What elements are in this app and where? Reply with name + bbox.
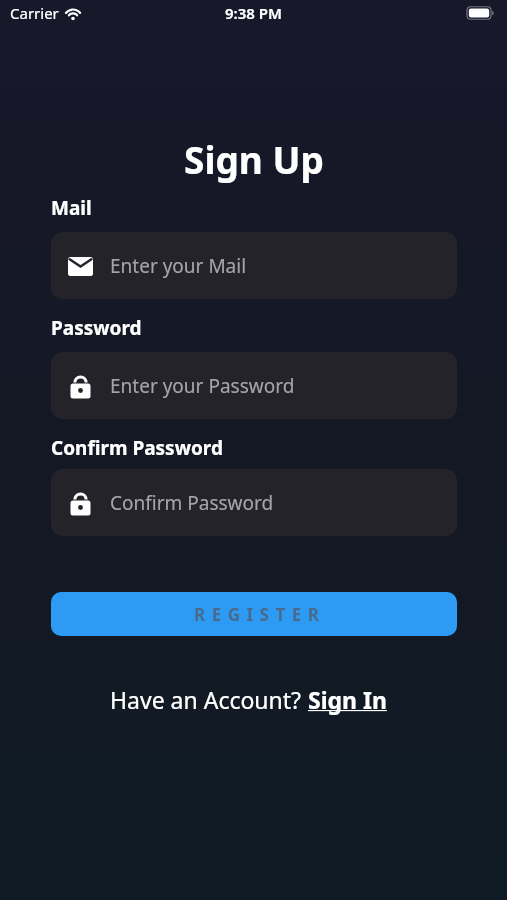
- button[interactable]: Enter your Password: [51, 352, 457, 419]
- staticText: REGISTER: [194, 603, 326, 626]
- button[interactable]: REGISTER: [51, 592, 457, 636]
- button[interactable]: Enter your Mail: [51, 232, 457, 299]
- staticText: Mail: [51, 195, 92, 221]
- button[interactable]: Confirm Password: [51, 469, 457, 536]
- button[interactable]: Sign In: [308, 684, 387, 715]
- staticText: Have an Account?: [110, 684, 308, 715]
- staticText: Enter your Mail: [110, 253, 247, 279]
- staticText: Enter your Password: [110, 373, 295, 399]
- staticText: Confirm Password: [110, 490, 274, 516]
- staticText: Sign Up: [184, 134, 324, 184]
- staticText: Confirm Password: [51, 435, 223, 461]
- staticText: Sign In: [308, 684, 387, 715]
- staticText: Password: [51, 315, 142, 341]
- staticText: Carrier: [10, 3, 59, 23]
- staticText: 9:38 PM: [225, 3, 282, 23]
